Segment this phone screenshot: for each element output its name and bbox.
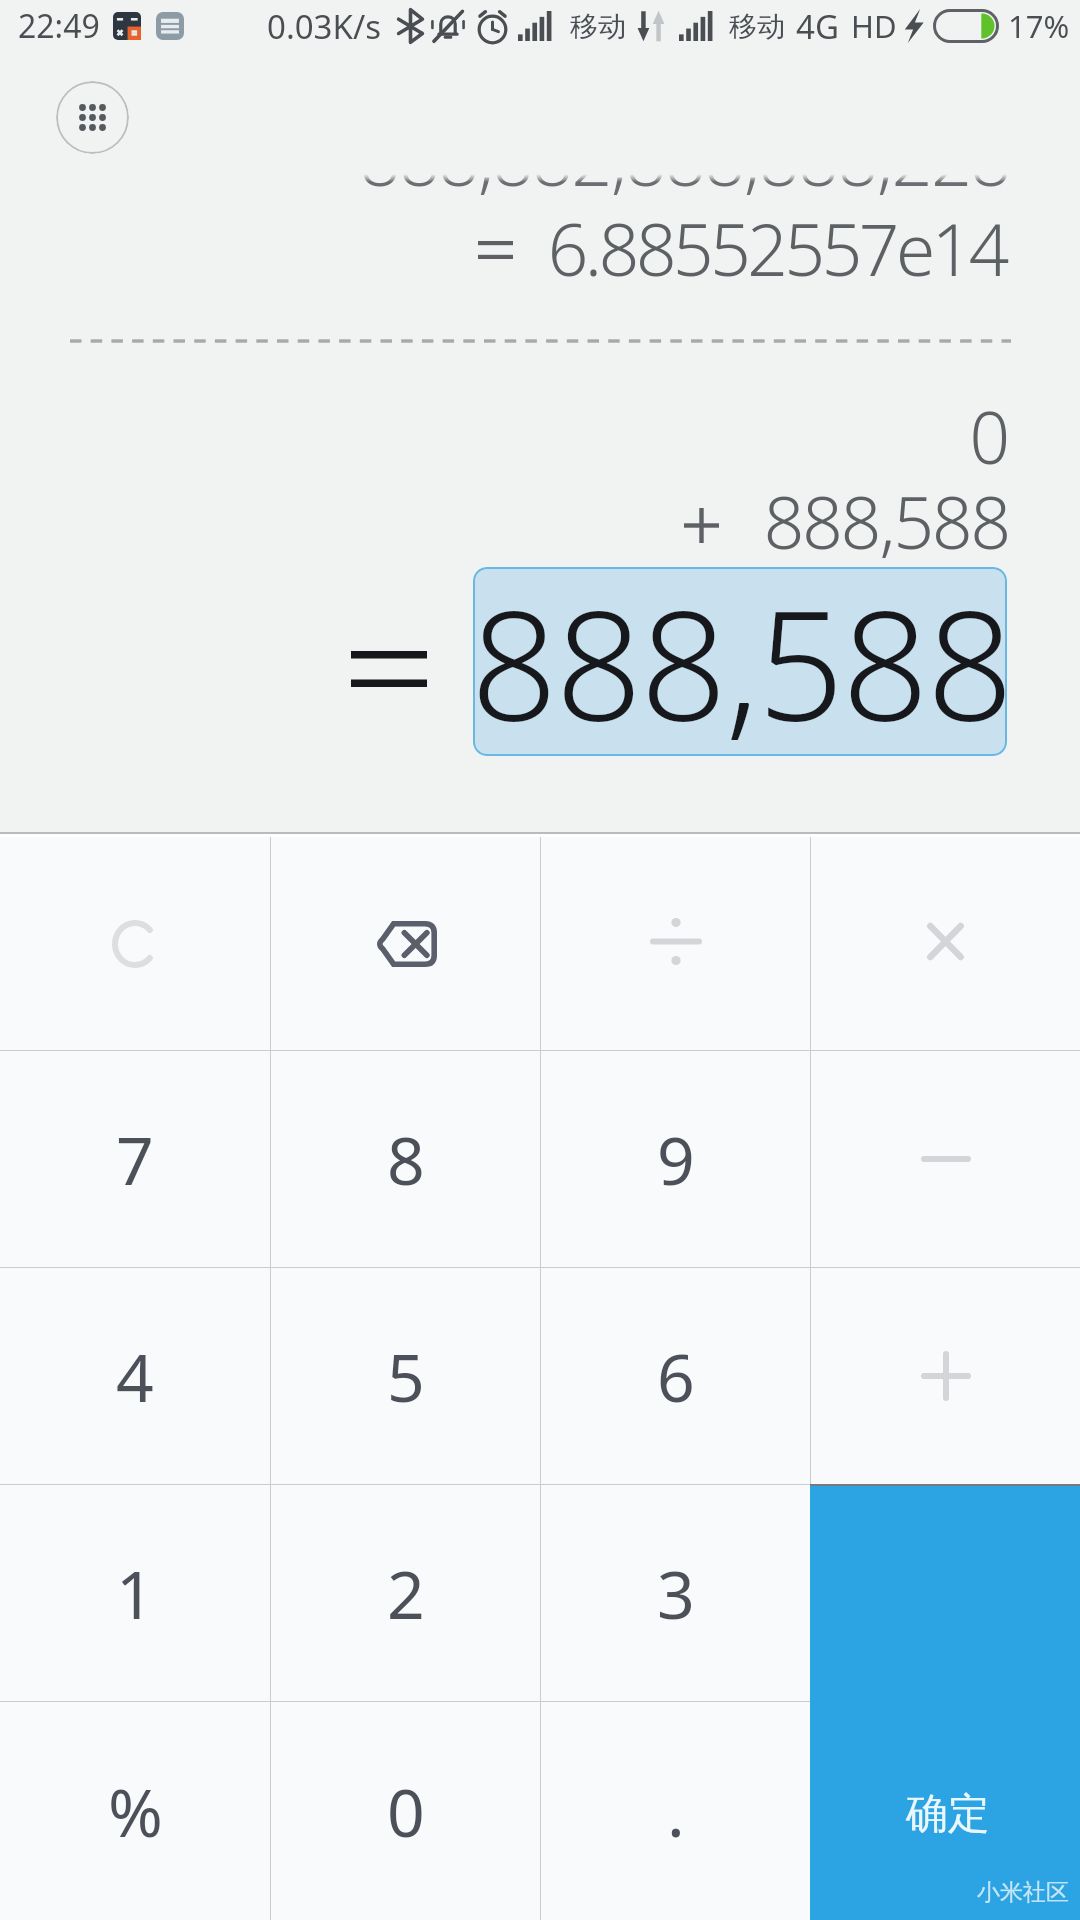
staticText: 0.03K/s — [267, 4, 381, 49]
staticText: 移动 — [729, 9, 785, 44]
staticText: 3 — [657, 1548, 695, 1638]
staticText: % — [108, 1766, 163, 1856]
button[interactable]: % — [0, 1702, 270, 1920]
button[interactable]: Plus — [811, 1268, 1080, 1484]
staticText: 0 — [969, 388, 1010, 485]
staticText: HD — [851, 5, 897, 47]
button[interactable]: Menu — [56, 81, 129, 154]
button[interactable]: 9 — [541, 1051, 810, 1267]
button[interactable]: . — [541, 1702, 810, 1920]
other: Clear — [112, 920, 158, 968]
button[interactable]: 0 — [271, 1702, 540, 1920]
button[interactable]: 3 — [541, 1485, 810, 1701]
button[interactable]: Divide — [541, 837, 810, 1050]
button[interactable]: 8 — [271, 1051, 540, 1267]
staticText: 6.88552557e14 — [547, 200, 1006, 297]
button[interactable]: 7 — [0, 1051, 270, 1267]
other: Plus — [921, 1351, 971, 1401]
button[interactable]: 确定 — [810, 1484, 1080, 1920]
button[interactable]: 6 — [541, 1268, 810, 1484]
staticText: 5 — [387, 1331, 425, 1421]
staticText: 4G — [796, 4, 839, 49]
staticText: 9 — [657, 1114, 695, 1204]
staticText: 4 — [116, 1331, 154, 1421]
staticText: 22:49 — [18, 4, 100, 48]
staticText: 2 — [387, 1548, 425, 1638]
staticText: 888,882,888,888,228 — [359, 110, 1010, 207]
button[interactable]: Multiply — [811, 837, 1080, 1050]
button[interactable]: 1 — [0, 1485, 270, 1701]
other: Divide — [652, 920, 700, 968]
button[interactable]: 4 — [0, 1268, 270, 1484]
staticText: 6 — [657, 1331, 695, 1421]
other: Backspace — [375, 921, 437, 967]
staticText: 小米社区 — [977, 1878, 1069, 1907]
staticText: 确定 — [906, 1788, 990, 1841]
staticText: 移动 — [570, 9, 626, 44]
staticText: 888,588 — [763, 473, 1009, 570]
staticText: 1 — [116, 1548, 154, 1638]
button[interactable] — [473, 567, 1007, 756]
button[interactable]: Backspace — [271, 837, 540, 1050]
staticText: 7 — [116, 1114, 154, 1204]
other: Multiply — [927, 921, 964, 967]
button[interactable]: 2 — [271, 1485, 540, 1701]
staticText: 0 — [387, 1766, 425, 1856]
staticText: 8 — [387, 1114, 425, 1204]
staticText: . — [667, 1766, 685, 1856]
other: Minus — [921, 1154, 971, 1164]
staticText: 888,588 — [471, 559, 1012, 765]
staticText: 17% — [1008, 5, 1070, 47]
button[interactable]: 5 — [271, 1268, 540, 1484]
